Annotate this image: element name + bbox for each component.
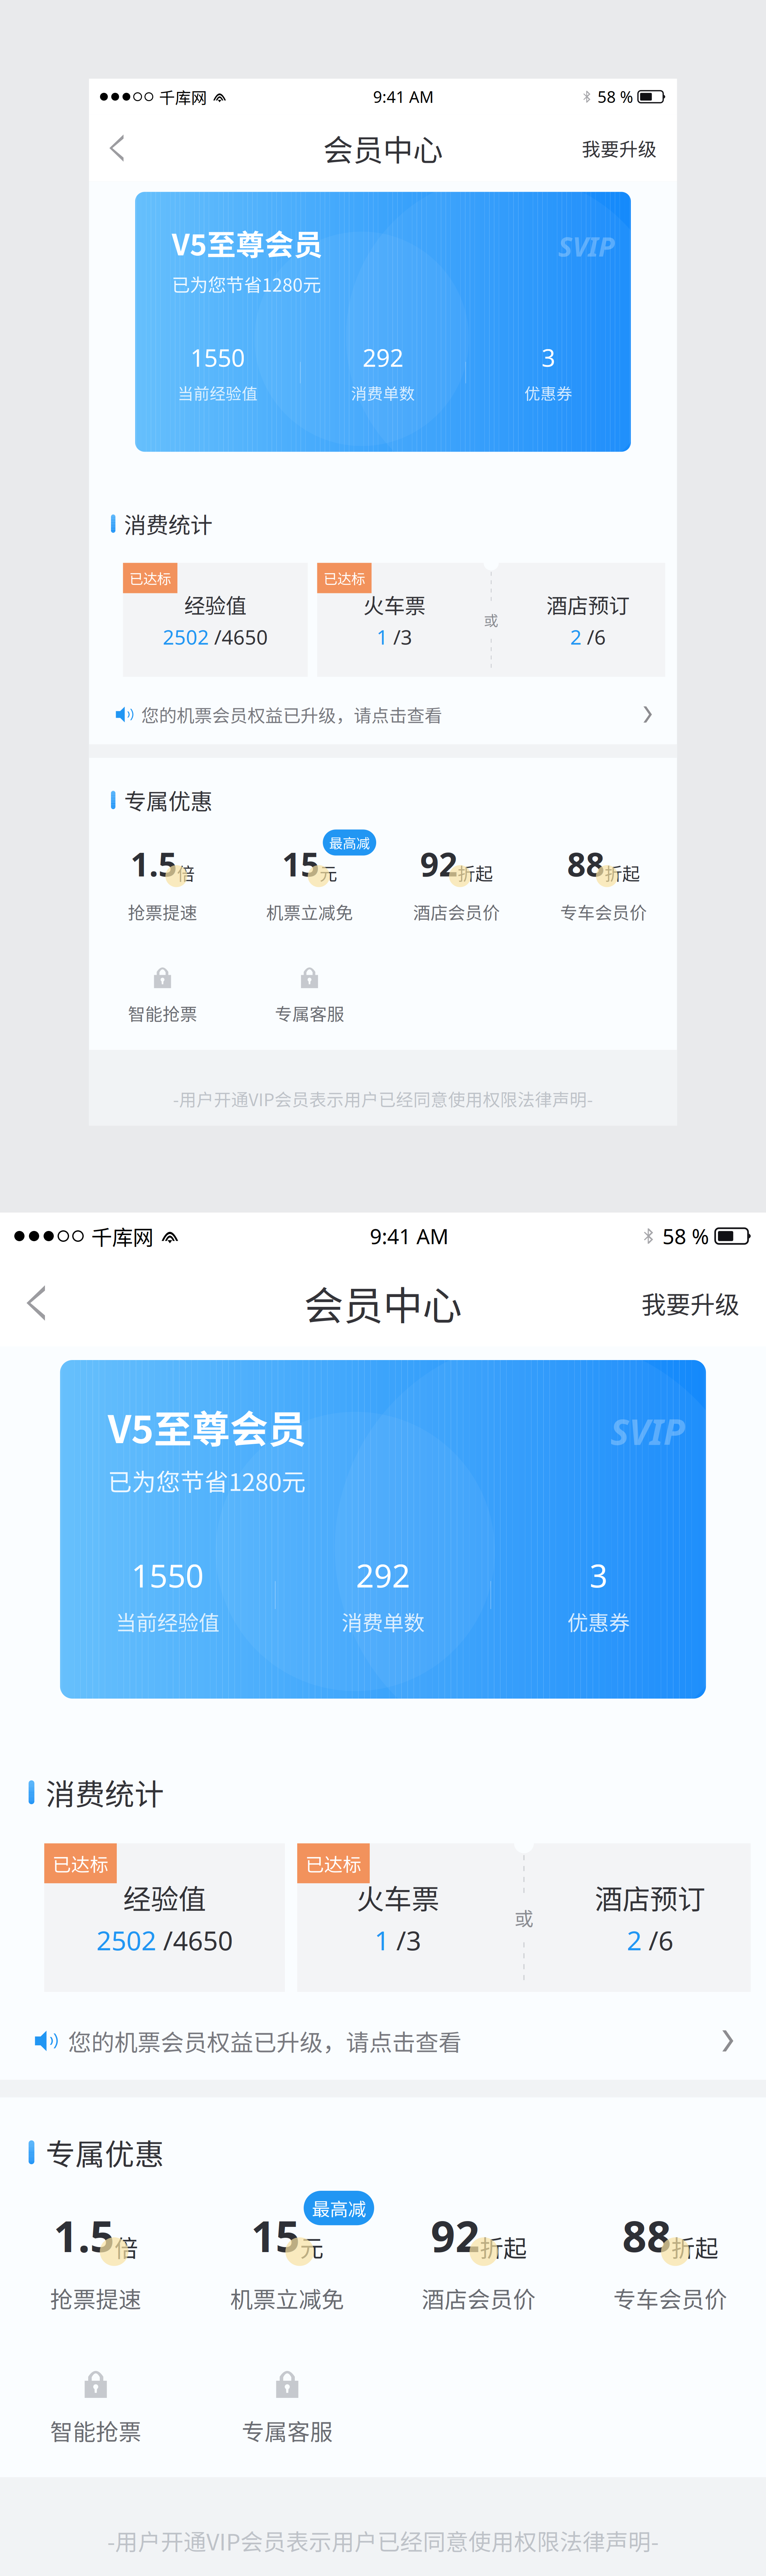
staticText: 已达标 <box>305 1850 362 1877</box>
staticText: 元 <box>319 860 337 886</box>
staticText: 倍 <box>114 2230 138 2264</box>
staticText: 专属客服 <box>242 2414 333 2447</box>
staticText: 专车会员价 <box>613 2282 727 2314</box>
staticText: -用户开通VIP会员表示用户已经同意使用权限法律声明- <box>107 2524 659 2557</box>
button[interactable]: 经验值 <box>44 1843 285 1992</box>
staticText: / <box>389 1922 406 1958</box>
staticText: 最高减 <box>312 2195 366 2221</box>
staticText: 2502 <box>96 1922 156 1958</box>
staticText: 消费统计 <box>124 508 213 540</box>
staticText: 9:41 AM <box>370 1222 449 1250</box>
staticText: 智能抢票 <box>50 2414 141 2447</box>
staticText: 当前经验值 <box>178 381 258 404</box>
staticText: 292 <box>363 341 403 374</box>
staticText: 折起 <box>604 860 640 886</box>
staticText: 1550 <box>131 1554 204 1597</box>
staticText: 元 <box>300 2230 323 2264</box>
staticText: 4650 <box>222 623 268 650</box>
staticText: V5至尊会员 <box>108 1399 306 1454</box>
staticText: 酒店预订 <box>595 1877 705 1917</box>
staticText: / <box>388 623 401 650</box>
staticText: 酒店会员价 <box>422 2282 536 2314</box>
staticText: / <box>209 623 222 650</box>
staticText: 专车会员价 <box>560 899 647 924</box>
staticText: 倍 <box>177 860 195 886</box>
staticText: 折起 <box>458 860 493 886</box>
staticText: 机票立减免 <box>266 899 353 924</box>
staticText: SVIP <box>610 1407 685 1455</box>
staticText: 88 <box>622 2206 671 2265</box>
staticText: 1.5 <box>54 2206 114 2265</box>
staticText: 消费单数 <box>341 1606 425 1637</box>
staticText: 2 <box>570 623 582 650</box>
staticText: 或 <box>514 1904 533 1931</box>
staticText: 经验值 <box>184 589 247 620</box>
staticText: 酒店预订 <box>546 589 630 620</box>
staticText: 优惠券 <box>524 381 572 404</box>
staticText: SVIP <box>558 228 615 264</box>
button[interactable]: 返回 <box>89 115 144 181</box>
staticText: 会员中心 <box>304 1274 462 1332</box>
button[interactable]: 火车票 <box>317 563 665 677</box>
staticText: 千库网 <box>159 85 207 108</box>
staticText: 已达标 <box>323 568 365 588</box>
button[interactable]: 您的机票会员权益已升级，请点击查看 <box>89 696 677 733</box>
button[interactable]: 经验值 <box>123 563 308 677</box>
staticText: 58 % <box>598 86 633 108</box>
staticText: 1.5 <box>130 842 177 886</box>
staticText: 92 <box>420 842 458 886</box>
staticText: 2502 <box>163 623 209 650</box>
staticText: 已达标 <box>129 568 171 588</box>
staticText: -用户开通VIP会员表示用户已经同意使用权限法律声明- <box>173 1086 593 1111</box>
staticText: 我要升级 <box>641 1285 739 1321</box>
staticText: 58 % <box>662 1222 709 1250</box>
button[interactable]: 您的机票会员权益已升级，请点击查看 <box>0 2017 766 2065</box>
staticText: 折起 <box>480 2230 527 2264</box>
staticText: 专属优惠 <box>46 2131 164 2174</box>
staticText: 抢票提速 <box>50 2282 141 2314</box>
staticText: 智能抢票 <box>128 1001 197 1026</box>
staticText: 酒店会员价 <box>413 899 500 924</box>
staticText: 已达标 <box>52 1850 109 1877</box>
staticText: 3 <box>542 341 555 374</box>
staticText: / <box>156 1922 173 1958</box>
staticText: 已为您节省1280元 <box>108 1463 306 1498</box>
staticText: 千库网 <box>91 1221 154 1251</box>
staticText: 2 <box>627 1922 642 1958</box>
staticText: 6 <box>594 623 606 650</box>
staticText: 1 <box>374 1922 389 1958</box>
staticText: 会员中心 <box>323 126 443 170</box>
staticText: 您的机票会员权益已升级，请点击查看 <box>68 2024 462 2058</box>
staticText: 或 <box>484 609 499 630</box>
staticText: 92 <box>431 2206 480 2265</box>
staticText: 3 <box>406 1922 421 1958</box>
staticText: 已为您节省1280元 <box>172 271 321 297</box>
staticText: 4650 <box>173 1922 233 1958</box>
staticText: 当前经验值 <box>116 1606 219 1637</box>
staticText: 最高减 <box>329 833 370 852</box>
staticText: 火车票 <box>363 589 426 620</box>
button[interactable]: 我要升级 <box>574 115 664 181</box>
staticText: 1550 <box>190 341 245 374</box>
staticText: 3 <box>589 1554 608 1597</box>
staticText: 消费单数 <box>351 381 415 404</box>
staticText: 292 <box>356 1554 410 1597</box>
staticText: 专属优惠 <box>124 784 213 816</box>
staticText: 9:41 AM <box>373 86 434 108</box>
button[interactable]: 我要升级 <box>631 1260 750 1346</box>
staticText: 您的机票会员权益已升级，请点击查看 <box>141 702 442 727</box>
staticText: 折起 <box>671 2230 718 2264</box>
staticText: 机票立减免 <box>230 2282 344 2314</box>
staticText: 15 <box>282 842 319 886</box>
button[interactable]: 火车票 <box>297 1843 751 1992</box>
staticText: / <box>582 623 594 650</box>
staticText: 抢票提速 <box>128 899 197 924</box>
staticText: 优惠券 <box>567 1606 630 1637</box>
button[interactable]: 返回 <box>0 1260 71 1346</box>
staticText: 3 <box>401 623 412 650</box>
staticText: 专属客服 <box>275 1001 344 1026</box>
staticText: 经验值 <box>123 1877 206 1917</box>
staticText: 我要升级 <box>582 135 657 162</box>
staticText: 6 <box>658 1922 673 1958</box>
staticText: 火车票 <box>356 1877 439 1917</box>
